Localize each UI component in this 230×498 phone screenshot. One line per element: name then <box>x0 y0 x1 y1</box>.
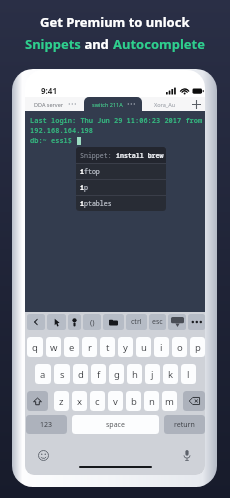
staticText: 123 <box>40 420 53 430</box>
button[interactable]: Snippet: <box>76 147 166 163</box>
button[interactable] <box>168 314 186 330</box>
staticText: i <box>80 167 84 176</box>
staticText: and <box>81 35 113 53</box>
staticText: ftop <box>84 167 100 176</box>
staticText: space <box>106 420 125 430</box>
staticText: d <box>78 368 84 381</box>
staticText: ctrl <box>131 317 142 327</box>
button[interactable]: m <box>162 391 177 411</box>
button[interactable]: f <box>91 364 106 384</box>
staticText: r <box>88 341 92 354</box>
button[interactable]: j <box>145 364 160 384</box>
button[interactable]: y <box>118 337 133 357</box>
button[interactable]: t <box>100 337 115 357</box>
staticText: l <box>187 368 190 381</box>
staticText: Snippet: <box>80 151 116 160</box>
staticText: k <box>168 368 174 381</box>
staticText: i <box>80 199 84 208</box>
staticText: 192.168.164.198 <box>30 126 93 136</box>
button[interactable] <box>27 314 45 330</box>
button[interactable]: l <box>181 364 196 384</box>
button[interactable]: i <box>76 196 166 211</box>
staticText: n <box>149 395 155 408</box>
button[interactable] <box>47 314 66 330</box>
button[interactable]: r <box>82 337 97 357</box>
button[interactable]: s <box>54 364 70 384</box>
button[interactable]: New tab <box>187 97 205 111</box>
staticText: a <box>40 368 46 381</box>
button[interactable]: w <box>46 337 61 357</box>
staticText: p <box>84 183 88 192</box>
staticText: switch 211A <box>92 101 123 108</box>
staticText: e <box>69 341 75 354</box>
staticText: Xora_Au <box>154 101 176 108</box>
button[interactable]: switch 211A <box>84 97 142 111</box>
staticText: i <box>160 341 163 354</box>
button[interactable]: i <box>76 180 166 195</box>
button[interactable]: i <box>154 337 169 357</box>
button[interactable]: z <box>54 391 69 411</box>
staticText: b <box>131 395 137 408</box>
staticText: u <box>141 341 147 354</box>
button[interactable] <box>103 314 124 330</box>
button[interactable]: () <box>83 314 101 330</box>
button[interactable]: u <box>136 337 151 357</box>
button[interactable]: space <box>72 415 159 434</box>
staticText: 9:41 <box>41 85 57 96</box>
button[interactable]: 123 <box>26 415 67 434</box>
button[interactable]: n <box>144 391 159 411</box>
staticText: w <box>50 341 58 354</box>
button[interactable]: q <box>27 337 43 357</box>
staticText: o <box>177 341 183 354</box>
button[interactable]: b <box>126 391 141 411</box>
button[interactable] <box>68 314 81 330</box>
button[interactable]: v <box>108 391 123 411</box>
staticText: g <box>114 368 120 381</box>
button[interactable]: Dictate <box>180 448 194 462</box>
button[interactable]: return <box>164 415 205 434</box>
staticText: h <box>132 368 138 381</box>
button[interactable]: Backspace <box>183 391 205 411</box>
staticText: s <box>60 368 65 381</box>
staticText: v <box>113 395 118 408</box>
staticText: install brew <box>116 151 164 160</box>
button[interactable]: Emoji <box>36 448 50 462</box>
staticText: esc <box>152 317 163 327</box>
staticText: db:~ essl$ <box>30 136 77 146</box>
button[interactable]: e <box>64 337 79 357</box>
button[interactable]: h <box>127 364 142 384</box>
button[interactable]: p <box>190 337 205 357</box>
button[interactable] <box>188 314 205 330</box>
button[interactable]: ctrl <box>126 314 147 330</box>
button[interactable]: esc <box>149 314 166 330</box>
button[interactable]: g <box>109 364 124 384</box>
button[interactable]: a <box>35 364 51 384</box>
staticText: t <box>106 341 110 354</box>
button[interactable]: o <box>172 337 187 357</box>
staticText: z <box>59 395 64 408</box>
staticText: i <box>80 183 84 192</box>
staticText: j <box>151 368 154 381</box>
staticText: DDA server <box>34 101 64 108</box>
staticText: p <box>195 341 201 354</box>
staticText: f <box>97 368 101 381</box>
staticText: Autocomplete <box>113 35 205 53</box>
staticText: Snippets <box>25 35 81 53</box>
staticText: Last login: Thu Jun 29 11:06:23 2017 fro… <box>30 116 203 126</box>
staticText: q <box>32 341 38 354</box>
button[interactable]: DDA server <box>25 97 84 111</box>
staticText: x <box>77 395 83 408</box>
button[interactable]: x <box>72 391 87 411</box>
staticText: m <box>165 395 174 408</box>
button[interactable]: c <box>90 391 105 411</box>
staticText: ptables <box>84 199 112 208</box>
staticText: c <box>95 395 100 408</box>
staticText: () <box>90 317 95 327</box>
button[interactable]: k <box>163 364 178 384</box>
button[interactable]: Xora_Au <box>142 97 187 111</box>
button[interactable]: d <box>73 364 88 384</box>
staticText: return <box>174 420 195 430</box>
staticText: y <box>123 341 128 354</box>
button[interactable]: Shift <box>27 391 48 411</box>
button[interactable]: i <box>76 164 166 179</box>
